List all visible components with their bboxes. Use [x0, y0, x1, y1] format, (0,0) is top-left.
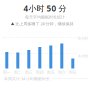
- staticText: 周日: [69, 70, 77, 75]
- staticText: 比上周多睡了 24 分钟，继续保持: [16, 21, 74, 26]
- staticText: 周六: [58, 70, 66, 75]
- staticText: 4小时: [78, 53, 88, 59]
- staticText: 周三: [25, 70, 33, 75]
- staticText: 周一: [3, 70, 11, 75]
- staticText: 本周共计 34 小时睡眠时长: [4, 76, 50, 81]
- staticText: 4小时 50 分: [23, 3, 66, 14]
- staticText: 8小时: [78, 35, 88, 41]
- staticText: 周二: [14, 70, 22, 75]
- staticText: 周四: [36, 70, 44, 75]
- staticText: 每天平均睡眠时长统计: [25, 15, 65, 19]
- staticText: 周五: [47, 70, 55, 75]
